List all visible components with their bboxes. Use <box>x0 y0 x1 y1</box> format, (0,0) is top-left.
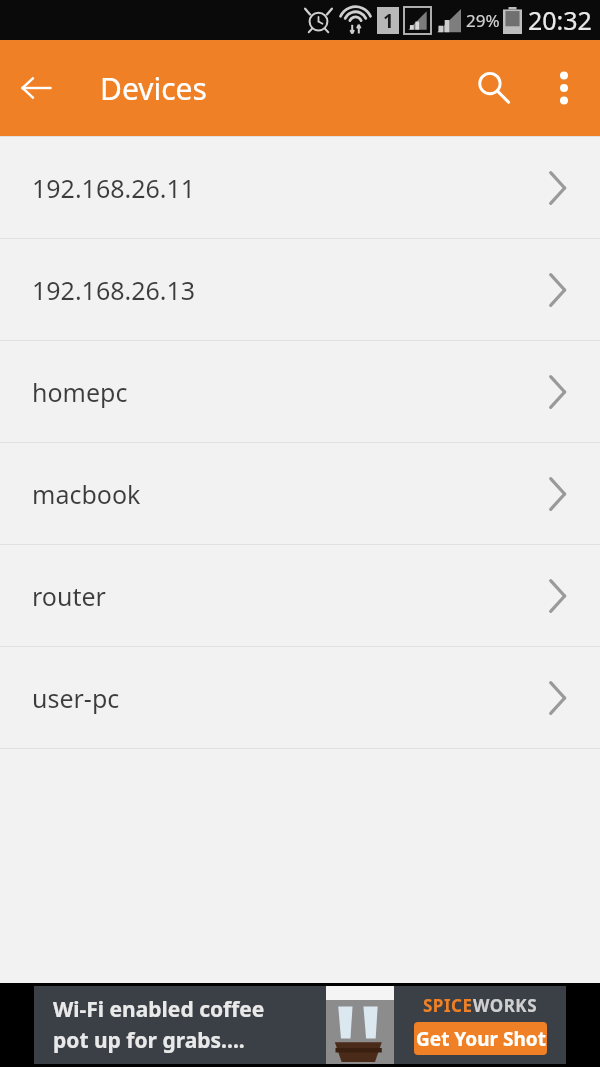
staticText: SPICE <box>423 994 473 1017</box>
staticText: user-pc <box>32 681 120 715</box>
button[interactable]: Get Your Shot <box>414 1022 547 1055</box>
staticText: 1 <box>383 8 394 34</box>
staticText: Get Your Shot <box>416 1026 546 1052</box>
button[interactable]: Search <box>456 50 532 126</box>
button[interactable]: More options <box>532 56 596 120</box>
button[interactable]: homepc <box>0 341 600 442</box>
staticText: Devices <box>100 68 207 109</box>
staticText: router <box>32 579 106 613</box>
staticText: 192.168.26.13 <box>32 273 196 307</box>
button[interactable]: Advertisement <box>34 986 566 1064</box>
staticText: pot up for grabs.... <box>53 1026 245 1055</box>
button[interactable]: Back <box>0 52 72 124</box>
staticText: WORKS <box>473 994 538 1017</box>
staticText: Wi-Fi enabled coffee <box>53 995 265 1024</box>
staticText: macbook <box>32 477 141 511</box>
button[interactable]: 192.168.26.13 <box>0 239 600 340</box>
button[interactable]: user-pc <box>0 647 600 748</box>
staticText: 29% <box>466 9 500 32</box>
staticText: 192.168.26.11 <box>32 171 196 205</box>
button[interactable]: 192.168.26.11 <box>0 137 600 238</box>
button[interactable]: router <box>0 545 600 646</box>
staticText: homepc <box>32 375 128 409</box>
staticText: 20:32 <box>528 3 592 37</box>
button[interactable]: macbook <box>0 443 600 544</box>
